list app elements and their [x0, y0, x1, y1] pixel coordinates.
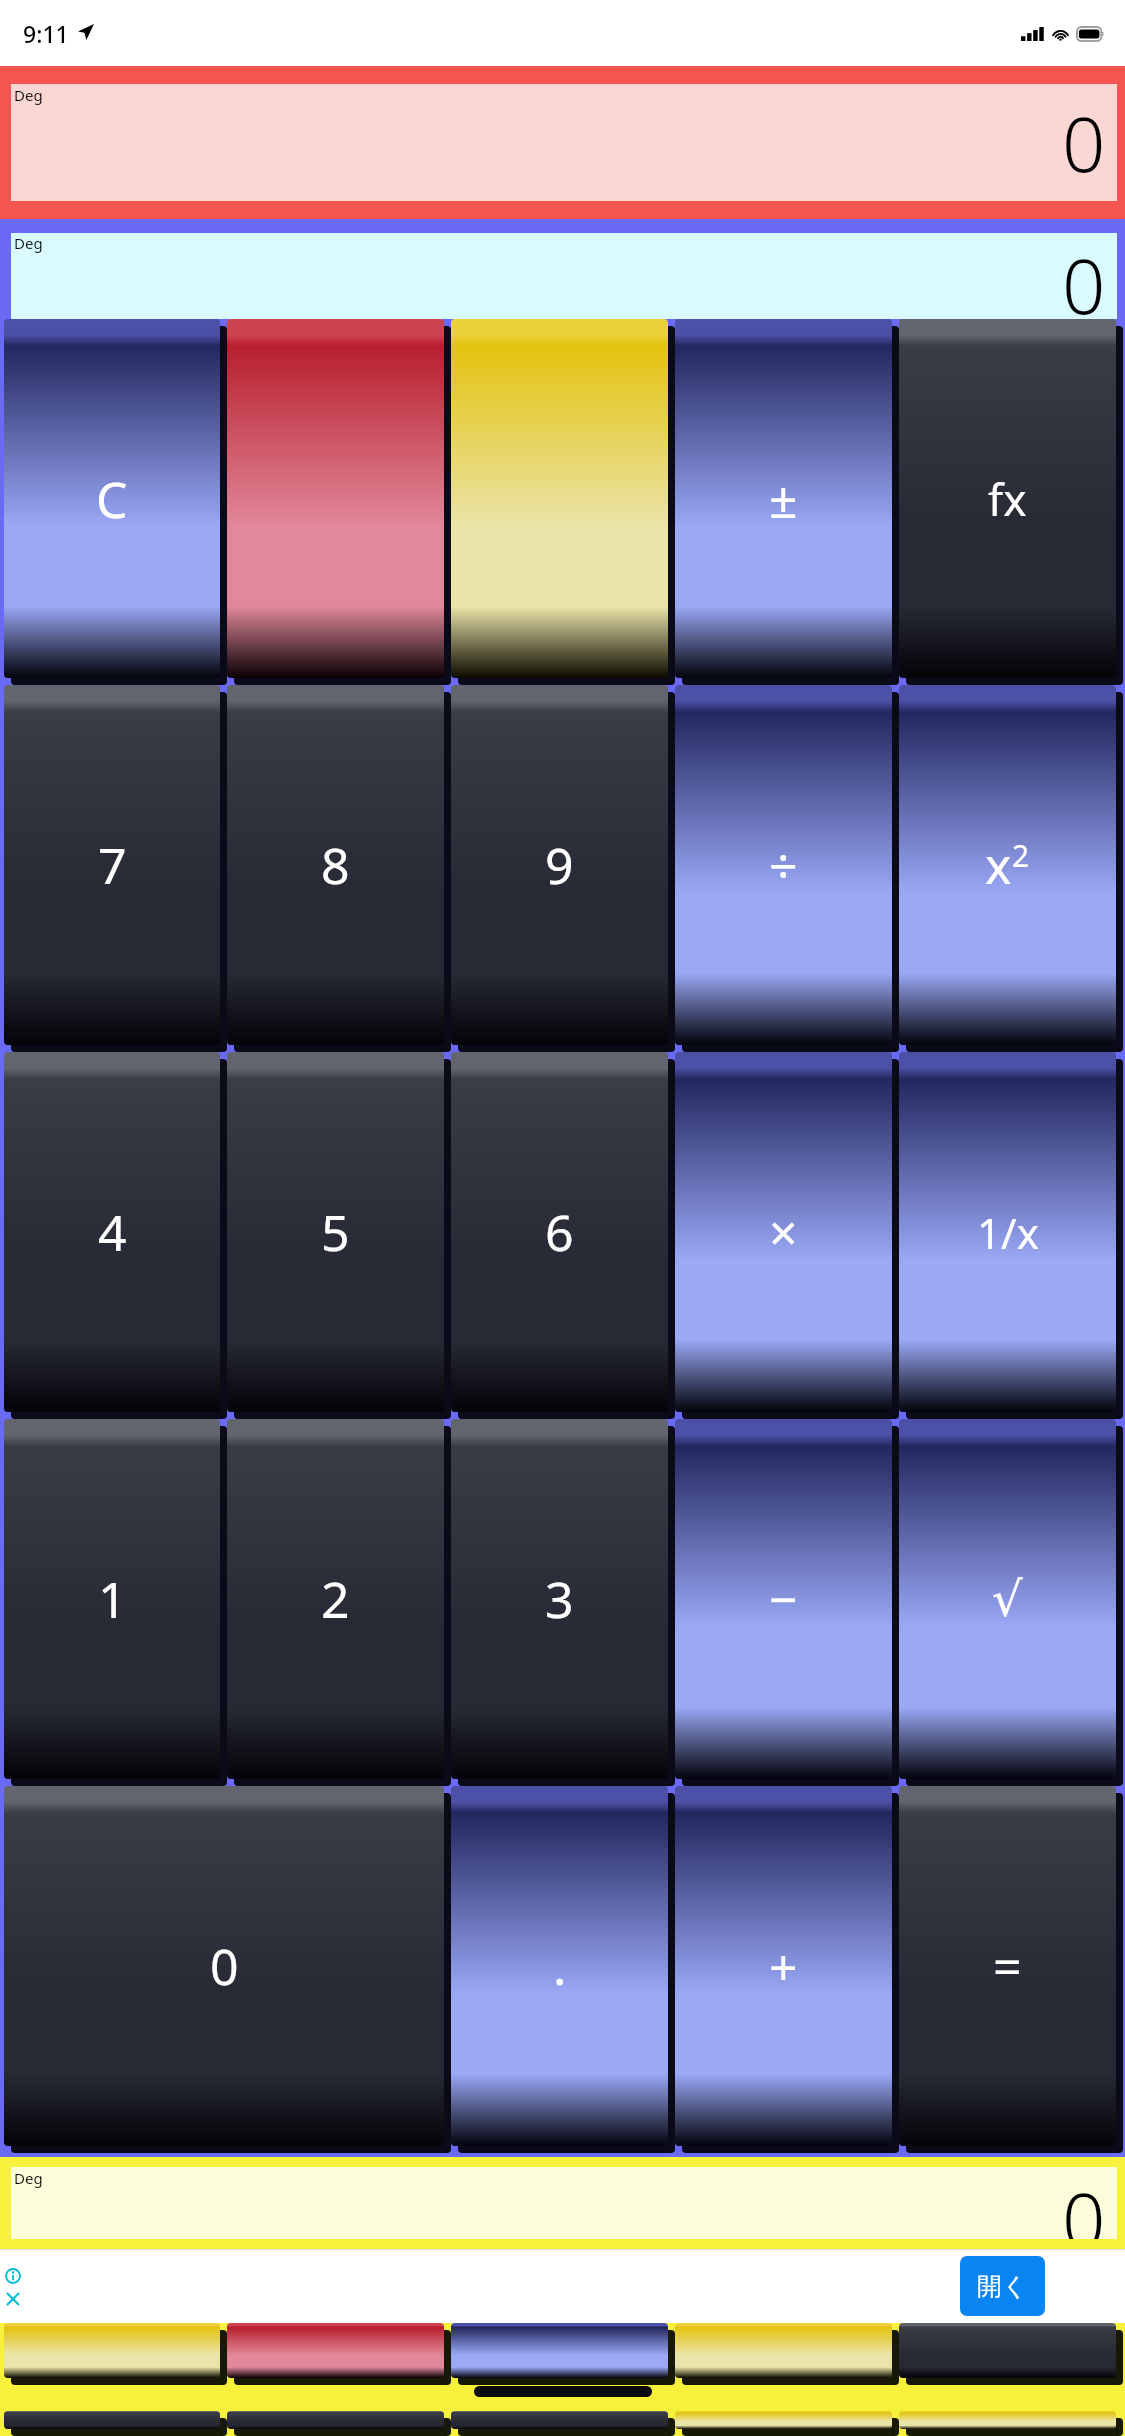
button[interactable]: 開く — [960, 2256, 1045, 2316]
button[interactable]: Key — [4, 2411, 227, 2436]
staticText: . — [553, 1932, 567, 2000]
button[interactable]: Key — [227, 2411, 451, 2436]
button[interactable]: − — [675, 1419, 899, 1786]
staticText: 0 — [1062, 233, 1106, 319]
staticText: 9 — [545, 831, 574, 899]
staticText: Deg — [14, 2168, 43, 2188]
staticText: 0 — [1062, 91, 1106, 195]
button[interactable]: √ — [899, 1419, 1123, 1786]
staticText: ÷ — [769, 831, 798, 899]
staticText: 7 — [98, 831, 127, 899]
button[interactable]: Key — [675, 2323, 899, 2385]
staticText: Deg — [14, 233, 43, 253]
staticText: 0 — [210, 1932, 239, 2000]
button[interactable]: Key — [451, 2411, 675, 2436]
button[interactable]: History — [227, 319, 451, 685]
staticText: √ — [992, 1571, 1023, 1627]
staticText: C — [96, 465, 128, 533]
staticText: + — [769, 1932, 798, 2000]
button[interactable]: 6 — [451, 1052, 675, 1419]
button[interactable]: . — [451, 1786, 675, 2153]
button[interactable]: Key — [899, 2323, 1123, 2385]
staticText: Deg — [14, 85, 43, 105]
button[interactable]: 1 — [4, 1419, 227, 1786]
button[interactable]: × — [675, 1052, 899, 1419]
button[interactable]: = — [899, 1786, 1123, 2153]
staticText: 0 — [1062, 2167, 1106, 2239]
staticText: fx — [988, 469, 1027, 529]
staticText: × — [769, 1198, 798, 1266]
staticText: x — [985, 831, 1012, 899]
button[interactable]: x — [899, 685, 1123, 1052]
button[interactable]: Key — [4, 2323, 227, 2385]
button[interactable]: ÷ — [675, 685, 899, 1052]
button[interactable]: 8 — [227, 685, 451, 1052]
button[interactable]: 5 — [227, 1052, 451, 1419]
button[interactable]: Key — [227, 2323, 451, 2385]
staticText: 4 — [98, 1198, 127, 1266]
button[interactable]: Key — [899, 2411, 1123, 2436]
button[interactable]: Memory — [451, 319, 675, 685]
button[interactable]: ± — [675, 319, 899, 685]
staticText: = — [993, 1932, 1022, 2000]
button[interactable]: Key — [451, 2323, 675, 2385]
button[interactable]: + — [675, 1786, 899, 2153]
staticText: 6 — [545, 1198, 574, 1266]
button[interactable]: 3 — [451, 1419, 675, 1786]
button[interactable]: C — [4, 319, 227, 685]
button[interactable]: 4 — [4, 1052, 227, 1419]
staticText: ± — [769, 465, 798, 533]
staticText: 開く — [977, 2271, 1028, 2302]
button[interactable]: 1/x — [899, 1052, 1123, 1419]
button[interactable]: Key — [675, 2411, 899, 2436]
staticText: 1 — [98, 1565, 127, 1633]
staticText: 3 — [545, 1565, 574, 1633]
staticText: 9:11 — [23, 18, 69, 49]
button[interactable]: 0 — [4, 1786, 451, 2153]
button[interactable]: 2 — [227, 1419, 451, 1786]
staticText: 1/x — [977, 1204, 1039, 1261]
staticText: 8 — [321, 831, 350, 899]
staticText: − — [769, 1565, 798, 1633]
staticText: 2 — [1012, 835, 1030, 876]
button[interactable]: 9 — [451, 685, 675, 1052]
button[interactable]: fx — [899, 319, 1123, 685]
staticText: 5 — [321, 1198, 350, 1266]
staticText: 2 — [321, 1565, 350, 1633]
button[interactable]: 7 — [4, 685, 227, 1052]
